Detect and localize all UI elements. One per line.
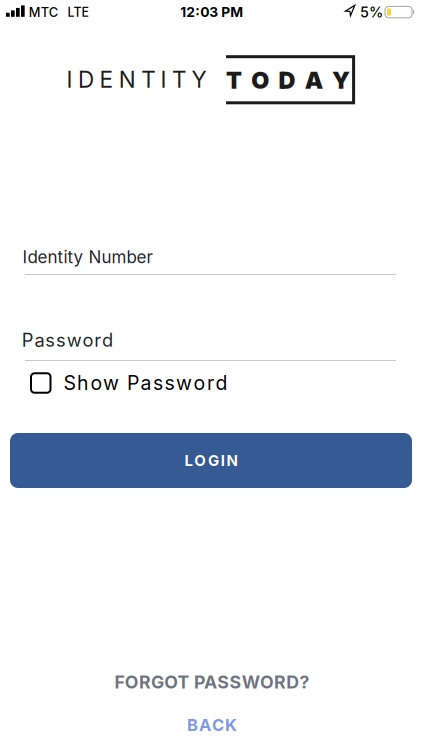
staticText: LTE: [67, 5, 88, 20]
button[interactable]: FORGOT PASSWORD?: [82, 667, 342, 697]
staticText: D: [78, 66, 94, 93]
staticText: N: [227, 451, 238, 469]
staticText: O: [251, 66, 269, 94]
staticText: A: [305, 66, 323, 94]
staticText: A: [199, 715, 211, 735]
staticText: N: [119, 66, 136, 93]
staticText: 12:03 PM: [180, 4, 243, 20]
button[interactable]: Show Password: [31, 369, 393, 397]
button[interactable]: L: [10, 433, 412, 488]
staticText: G: [208, 451, 219, 469]
staticText: Password: [22, 329, 113, 351]
staticText: C: [212, 715, 224, 735]
staticText: I: [67, 66, 73, 93]
staticText: T: [141, 66, 155, 93]
staticText: 5%: [360, 4, 383, 21]
staticText: B: [187, 715, 198, 735]
button[interactable]: B: [187, 715, 237, 735]
staticText: E: [99, 66, 113, 93]
staticText: K: [225, 715, 237, 735]
staticText: FORGOT PASSWORD?: [114, 671, 309, 693]
staticText: Y: [191, 66, 206, 93]
staticText: O: [194, 451, 206, 469]
staticText: Show Password: [63, 371, 227, 395]
staticText: Y: [332, 66, 350, 94]
staticText: D: [278, 66, 295, 94]
staticText: I: [161, 66, 167, 93]
staticText: I: [221, 451, 225, 469]
staticText: MTC: [29, 5, 58, 20]
staticText: L: [184, 451, 192, 469]
staticText: T: [226, 66, 242, 94]
staticText: T: [172, 66, 186, 93]
staticText: Identity Number: [22, 247, 152, 267]
